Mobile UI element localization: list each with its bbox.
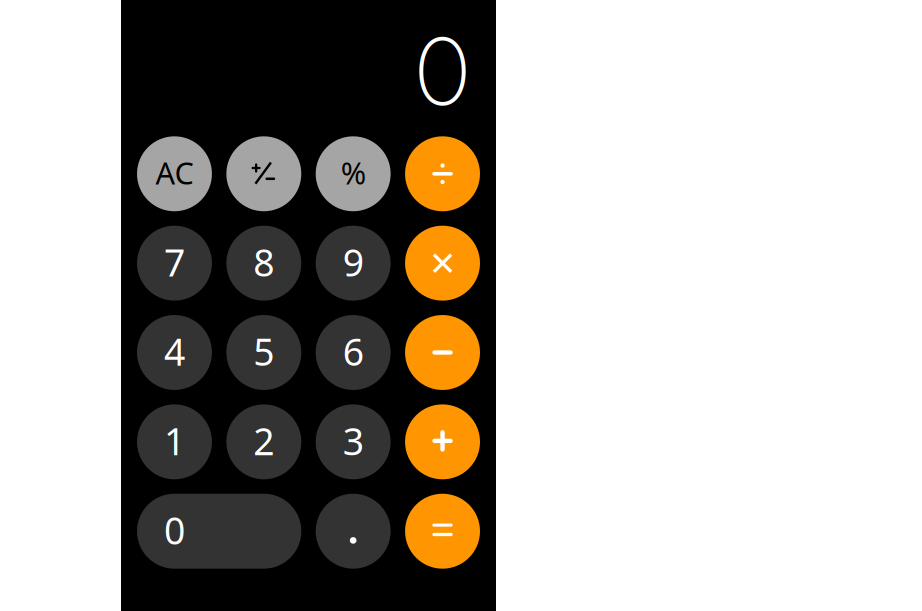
- button[interactable]: 9: [316, 226, 391, 301]
- button[interactable]: 5: [226, 315, 301, 390]
- button[interactable]: Plus: [405, 404, 480, 479]
- staticText: AC: [155, 152, 193, 193]
- button[interactable]: 3: [316, 404, 391, 479]
- button[interactable]: Multiply: [405, 226, 480, 301]
- button[interactable]: 1: [137, 404, 212, 479]
- button[interactable]: Minus: [405, 315, 480, 390]
- button[interactable]: Equals: [405, 494, 480, 569]
- staticText: 6: [343, 326, 364, 376]
- staticText: 2: [253, 416, 274, 465]
- staticText: 8: [253, 237, 274, 287]
- button[interactable]: Decimal point: [316, 494, 391, 569]
- button[interactable]: 0: [137, 494, 301, 569]
- staticText: %: [341, 152, 366, 193]
- staticText: 1: [164, 416, 185, 465]
- staticText: 3: [343, 416, 364, 465]
- staticText: 0: [164, 505, 185, 555]
- button[interactable]: 7: [137, 226, 212, 301]
- button[interactable]: 8: [226, 226, 301, 301]
- button[interactable]: 2: [226, 404, 301, 479]
- button[interactable]: Plus minus: [226, 136, 301, 211]
- button[interactable]: 4: [137, 315, 212, 390]
- button[interactable]: AC: [137, 136, 212, 211]
- staticText: 9: [343, 237, 364, 287]
- staticText: 0: [416, 16, 469, 127]
- button[interactable]: Divide: [405, 136, 480, 211]
- staticText: 5: [253, 326, 274, 376]
- staticText: 4: [164, 326, 185, 376]
- button[interactable]: %: [316, 136, 391, 211]
- button[interactable]: 6: [316, 315, 391, 390]
- staticText: 7: [164, 237, 185, 287]
